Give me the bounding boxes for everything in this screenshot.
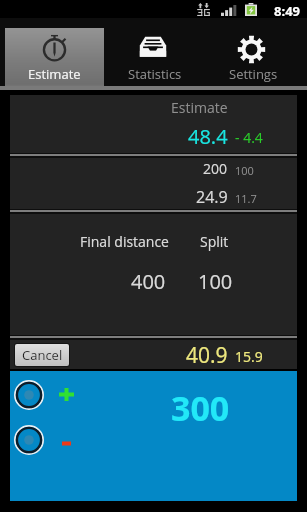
staticText: 48.4	[188, 123, 228, 150]
staticText: - 4.4	[235, 128, 263, 147]
button[interactable]: Add split	[10, 379, 100, 411]
staticText: Final distance	[80, 232, 169, 251]
staticText: 8:49	[274, 2, 300, 20]
staticText: 24.9	[196, 186, 228, 208]
staticText: Split	[200, 232, 229, 251]
staticText: 15.9	[235, 347, 263, 366]
staticText: 200	[203, 159, 228, 178]
staticText: Cancel	[22, 346, 63, 364]
button[interactable]: Statistics	[104, 28, 203, 90]
staticText: 100	[198, 268, 233, 295]
button[interactable]: Estimate	[5, 28, 104, 90]
button[interactable]: Cancel	[15, 344, 69, 366]
staticText: 400	[131, 268, 166, 295]
button[interactable]: Remove split	[10, 424, 100, 456]
staticText: Estimate	[171, 98, 228, 117]
staticText: 300	[171, 385, 230, 431]
staticText: 11.7	[235, 191, 257, 206]
staticText: 100	[235, 163, 254, 178]
staticText: 40.9	[186, 341, 228, 370]
button[interactable]: Settings	[203, 28, 302, 90]
staticText: Estimate	[28, 65, 81, 83]
staticText: Statistics	[128, 65, 182, 83]
staticText: Settings	[229, 65, 278, 83]
